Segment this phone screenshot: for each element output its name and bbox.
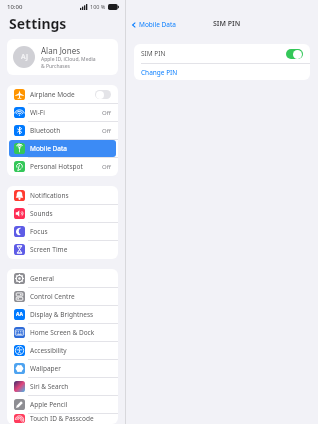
- button[interactable]: Personal Hotspot: [9, 158, 116, 175]
- button[interactable]: Notifications: [9, 187, 116, 204]
- staticText: Focus: [30, 227, 48, 236]
- button[interactable]: Wallpaper: [9, 360, 116, 377]
- staticText: Off: [102, 109, 111, 117]
- staticText: Wallpaper: [30, 364, 61, 373]
- staticText: Sounds: [30, 209, 53, 218]
- button[interactable]: AA: [9, 306, 116, 323]
- staticText: General: [30, 274, 54, 283]
- button[interactable]: SIM PIN toggle: [286, 49, 303, 59]
- staticText: Airplane Mode: [30, 90, 75, 99]
- staticText: 10:00: [7, 3, 23, 11]
- button[interactable]: Accessibility: [9, 342, 116, 359]
- button[interactable]: Touch ID & Passcode: [9, 414, 116, 423]
- button[interactable]: General: [9, 270, 116, 287]
- button[interactable]: Control Centre: [9, 288, 116, 305]
- staticText: Touch ID & Passcode: [30, 414, 94, 423]
- staticText: Off: [102, 163, 111, 171]
- staticText: Personal Hotspot: [30, 162, 83, 171]
- staticText: Screen Time: [30, 245, 68, 254]
- button[interactable]: Siri & Search: [9, 378, 116, 395]
- staticText: Notifications: [30, 191, 69, 200]
- button[interactable]: Airplane Mode: [9, 86, 116, 103]
- staticText: Accessibility: [30, 346, 67, 355]
- staticText: Siri & Search: [30, 382, 69, 391]
- button[interactable]: AJ: [7, 39, 118, 75]
- button[interactable]: Wi-Fi: [9, 104, 116, 121]
- staticText: Off: [102, 127, 111, 135]
- staticText: Mobile Data: [139, 20, 176, 29]
- button[interactable]: Home Screen & Dock: [9, 324, 116, 341]
- staticText: Change PIN: [141, 68, 178, 77]
- staticText: Apple ID, iCloud, Media & Purchases: [41, 56, 96, 69]
- staticText: Display & Brightness: [30, 310, 94, 319]
- button[interactable]: Focus: [9, 223, 116, 240]
- staticText: AJ: [21, 52, 28, 62]
- button[interactable]: SIM PIN: [134, 44, 310, 63]
- staticText: Apple Pencil: [30, 400, 68, 409]
- staticText: 100 %: [90, 3, 106, 10]
- staticText: Mobile Data: [30, 144, 67, 153]
- staticText: Wi-Fi: [30, 108, 45, 117]
- button[interactable]: Sounds: [9, 205, 116, 222]
- button[interactable]: Apple Pencil: [9, 396, 116, 413]
- staticText: Settings: [9, 14, 67, 33]
- staticText: Alan Jones: [41, 45, 80, 56]
- staticText: Control Centre: [30, 292, 75, 301]
- button[interactable]: Mobile Data: [126, 17, 180, 32]
- staticText: SIM PIN: [213, 19, 241, 29]
- staticText: Home Screen & Dock: [30, 328, 95, 337]
- staticText: SIM PIN: [141, 49, 166, 58]
- button[interactable]: Change PIN: [134, 64, 310, 80]
- button[interactable]: Mobile Data: [9, 140, 116, 157]
- button[interactable]: Bluetooth: [9, 122, 116, 139]
- button[interactable]: Screen Time: [9, 241, 116, 258]
- button[interactable]: Airplane Mode toggle: [95, 90, 111, 99]
- staticText: Bluetooth: [30, 126, 61, 135]
- staticText: AA: [16, 311, 23, 318]
